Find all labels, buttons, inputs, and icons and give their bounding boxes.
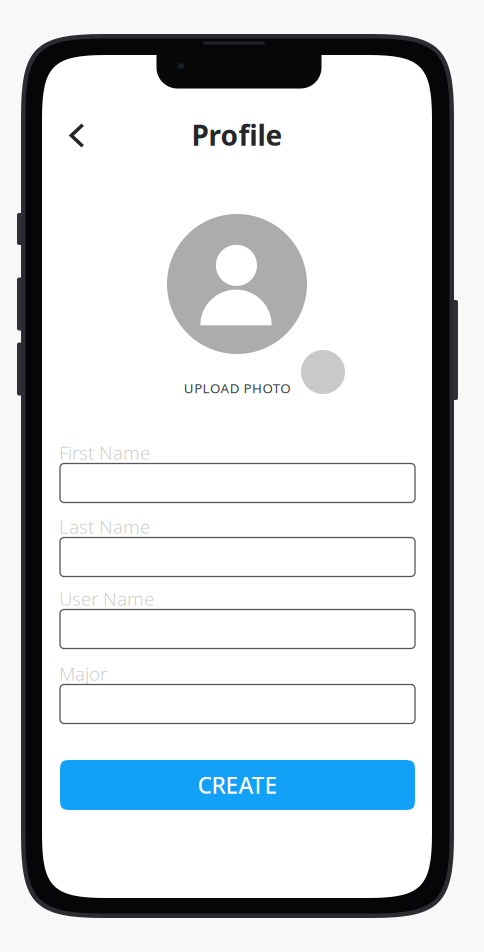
staticText: UPLOAD PHOTO [184,379,290,397]
button[interactable] [60,537,415,576]
button[interactable]: UPLOAD PHOTO [184,379,290,397]
staticText: User Name [59,586,154,611]
button[interactable]: Profile photo [167,214,307,354]
staticText: First Name [59,440,150,465]
button[interactable]: Back [55,113,99,157]
button[interactable] [60,609,415,648]
staticText: CREATE [197,770,277,800]
staticText: Major [59,661,107,686]
staticText: Profile [191,116,282,154]
button[interactable] [60,463,415,502]
staticText: Last Name [59,514,150,539]
button[interactable]: CREATE [60,760,415,810]
button[interactable] [60,684,415,723]
